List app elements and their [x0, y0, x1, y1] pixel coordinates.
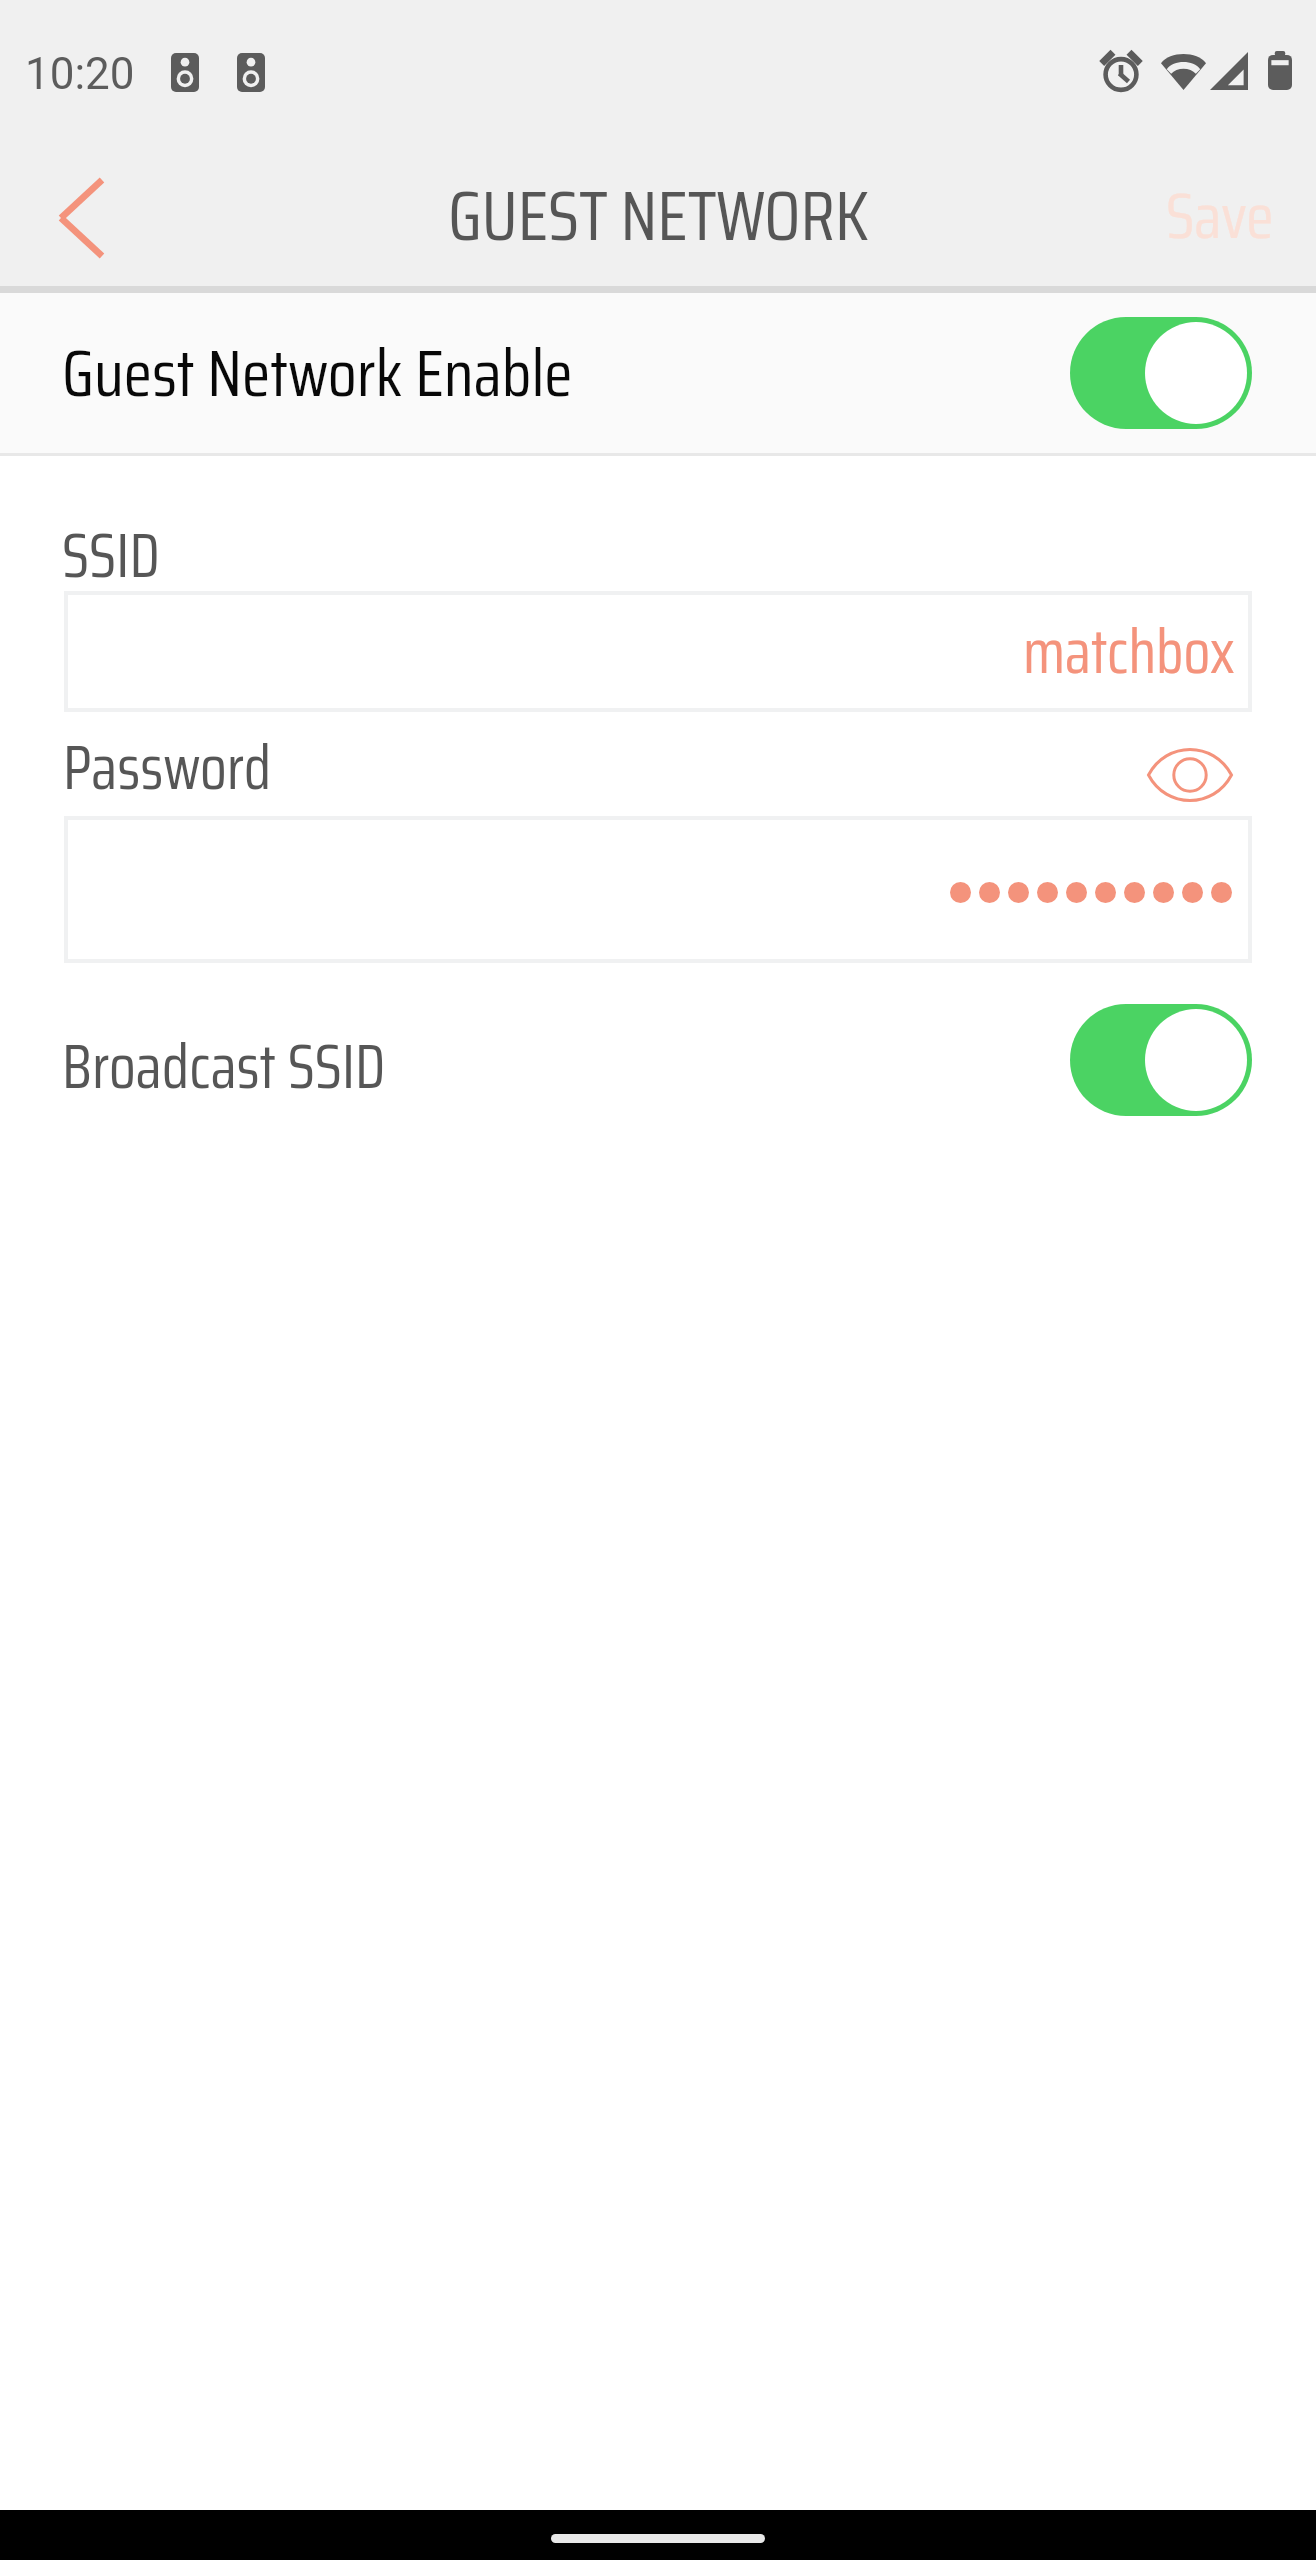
staticText: GUEST NETWORK	[448, 161, 869, 271]
button[interactable]: Show password	[1128, 723, 1252, 827]
staticText: SSID	[62, 508, 160, 604]
button[interactable]: Broadcast SSID	[1070, 1004, 1252, 1116]
staticText: matchbox	[1023, 604, 1235, 700]
button[interactable]: Password field	[64, 816, 1252, 963]
button[interactable]: Back	[14, 145, 144, 286]
button[interactable]: matchbox	[64, 591, 1252, 712]
button[interactable]: Guest Network Enable	[0, 293, 1316, 453]
button[interactable]: Guest network enable	[1070, 317, 1252, 429]
staticText: Save	[1166, 165, 1274, 266]
staticText: Broadcast SSID	[62, 1019, 386, 1115]
button[interactable]: Home	[551, 2534, 765, 2543]
staticText: Password	[63, 720, 272, 816]
staticText: Guest Network Enable	[62, 321, 573, 425]
button[interactable]: Broadcast SSID	[0, 980, 1316, 1140]
staticText: 10:20	[25, 48, 135, 100]
button[interactable]: Save	[1116, 145, 1316, 286]
